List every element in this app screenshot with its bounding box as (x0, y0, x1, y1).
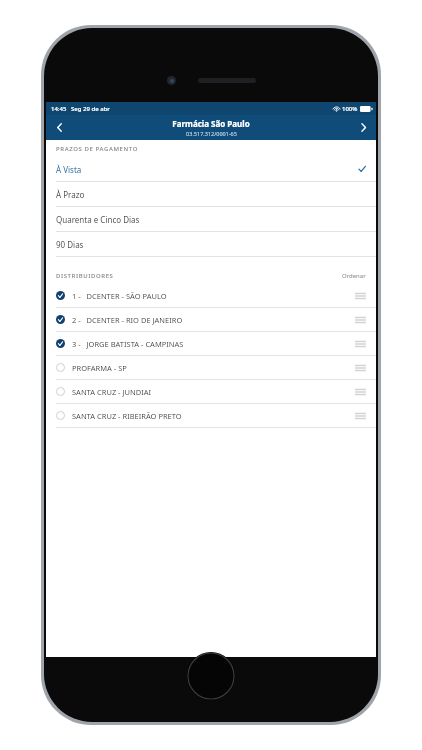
button[interactable]: SANTA CRUZ - RIBEIRÃO PRETO (46, 404, 376, 428)
button[interactable]: Quarenta e Cinco Dias (46, 207, 376, 232)
button[interactable]: À Prazo (46, 182, 376, 207)
staticText: 90 Dias (56, 239, 84, 250)
staticText: PROFARMA - SP (72, 363, 355, 373)
staticText: DISTRIBUIDORES (56, 272, 114, 280)
button[interactable]: SANTA CRUZ - JUNDIAI (46, 380, 376, 404)
staticText: SANTA CRUZ - JUNDIAI (72, 387, 355, 397)
staticText: 100% (342, 105, 358, 113)
staticText: 1 - DCENTER - SÃO PAULO (72, 291, 355, 301)
staticText: Farmácia São Paulo (172, 118, 250, 129)
button[interactable]: 3 - JORGE BATISTA - CAMPINAS (46, 332, 376, 356)
staticText: À Vista (56, 164, 82, 175)
staticText: 3 - JORGE BATISTA - CAMPINAS (72, 339, 355, 349)
staticText: Quarenta e Cinco Dias (56, 214, 140, 225)
staticText: 03.517.312/0001-65 (186, 130, 237, 137)
button[interactable]: À Vista (46, 157, 376, 182)
button[interactable]: PROFARMA - SP (46, 356, 376, 380)
staticText: 2 - DCENTER - RIO DE JANEIRO (72, 315, 355, 325)
button[interactable]: 2 - DCENTER - RIO DE JANEIRO (46, 308, 376, 332)
staticText: Ordenar (342, 272, 366, 280)
staticText: SANTA CRUZ - RIBEIRÃO PRETO (72, 411, 355, 421)
button[interactable]: Ordenar (332, 269, 376, 283)
button[interactable]: 90 Dias (46, 232, 376, 257)
button[interactable]: Back (46, 115, 72, 140)
staticText: À Prazo (56, 189, 85, 200)
button[interactable]: Forward (350, 115, 376, 140)
staticText: PRAZOS DE PAGAMENTO (56, 145, 138, 153)
button[interactable]: 1 - DCENTER - SÃO PAULO (46, 284, 376, 308)
staticText: 14:45 Seg 29 de abr (51, 105, 110, 113)
